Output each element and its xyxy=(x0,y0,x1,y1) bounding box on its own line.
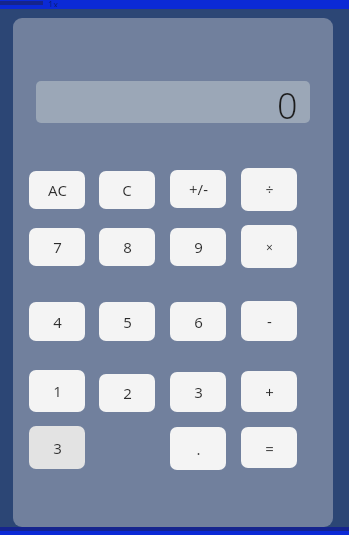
button[interactable]: 9 xyxy=(170,228,226,266)
button[interactable]: Subtract xyxy=(241,301,297,341)
staticText: 7 xyxy=(53,237,62,257)
button[interactable]: 0 xyxy=(36,81,310,123)
button[interactable]: 8 xyxy=(99,228,155,266)
staticText: AC xyxy=(48,180,67,200)
staticText: - xyxy=(267,311,272,331)
button[interactable]: 4 xyxy=(29,302,85,341)
staticText: + xyxy=(265,382,274,402)
button[interactable]: AC xyxy=(29,171,85,209)
staticText: 2 xyxy=(123,383,132,403)
staticText: . xyxy=(196,439,201,459)
button[interactable]: 2 xyxy=(99,374,155,412)
button[interactable]: 6 xyxy=(170,302,226,341)
staticText: ÷ xyxy=(265,180,274,199)
staticText: 0 xyxy=(277,81,298,123)
button[interactable]: Add xyxy=(241,371,297,412)
staticText: 9 xyxy=(194,237,203,257)
staticText: 6 xyxy=(194,312,203,332)
staticText: 3 xyxy=(53,438,62,458)
button[interactable]: Divide xyxy=(241,168,297,211)
staticText: 8 xyxy=(123,237,132,257)
button[interactable]: 3 xyxy=(170,372,226,412)
staticText: C xyxy=(122,180,132,200)
button[interactable]: Decimal point xyxy=(170,427,226,470)
button[interactable]: C xyxy=(99,171,155,209)
staticText: 1 xyxy=(53,381,62,401)
button[interactable]: 3 xyxy=(29,426,85,469)
button[interactable]: Multiply xyxy=(241,225,297,268)
button[interactable]: 7 xyxy=(29,228,85,266)
staticText: +/- xyxy=(189,179,208,199)
staticText: 4 xyxy=(53,312,62,332)
staticText: 5 xyxy=(123,312,132,332)
button[interactable]: Equals xyxy=(241,427,297,468)
staticText: = xyxy=(265,438,274,458)
staticText: 3 xyxy=(194,382,203,402)
button[interactable]: +/- xyxy=(170,170,226,208)
button[interactable]: 1 xyxy=(29,370,85,412)
button[interactable]: 5 xyxy=(99,302,155,341)
staticText: × xyxy=(266,239,273,255)
staticText: 1x xyxy=(48,0,58,7)
